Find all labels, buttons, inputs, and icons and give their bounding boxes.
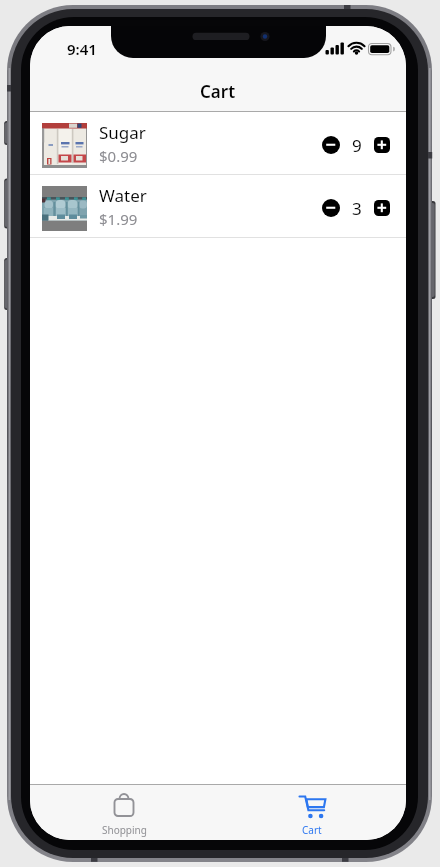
staticText: Cart <box>200 80 236 103</box>
button[interactable] <box>374 200 390 216</box>
button[interactable]: Water <box>30 175 406 237</box>
button[interactable]: Cart <box>218 785 406 840</box>
button[interactable] <box>374 137 390 153</box>
staticText: Cart <box>302 823 322 837</box>
button[interactable]: Sugar <box>30 112 406 174</box>
staticText: Shopping <box>102 823 147 837</box>
staticText: 9:41 <box>67 39 97 59</box>
button[interactable]: Shopping <box>30 785 218 840</box>
button[interactable] <box>322 136 340 154</box>
staticText: 3 <box>352 197 362 220</box>
staticText: Water <box>99 184 147 207</box>
button[interactable] <box>322 199 340 217</box>
staticText: 9 <box>352 134 362 157</box>
staticText: Sugar <box>99 121 146 144</box>
staticText: $0.99 <box>99 146 138 166</box>
staticText: $1.99 <box>99 209 138 229</box>
